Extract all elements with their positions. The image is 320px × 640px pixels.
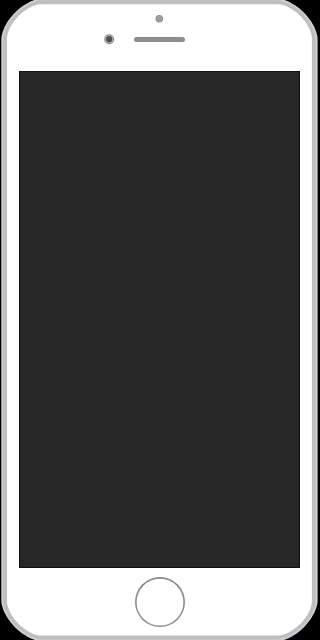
button[interactable]: Home: [135, 577, 185, 627]
